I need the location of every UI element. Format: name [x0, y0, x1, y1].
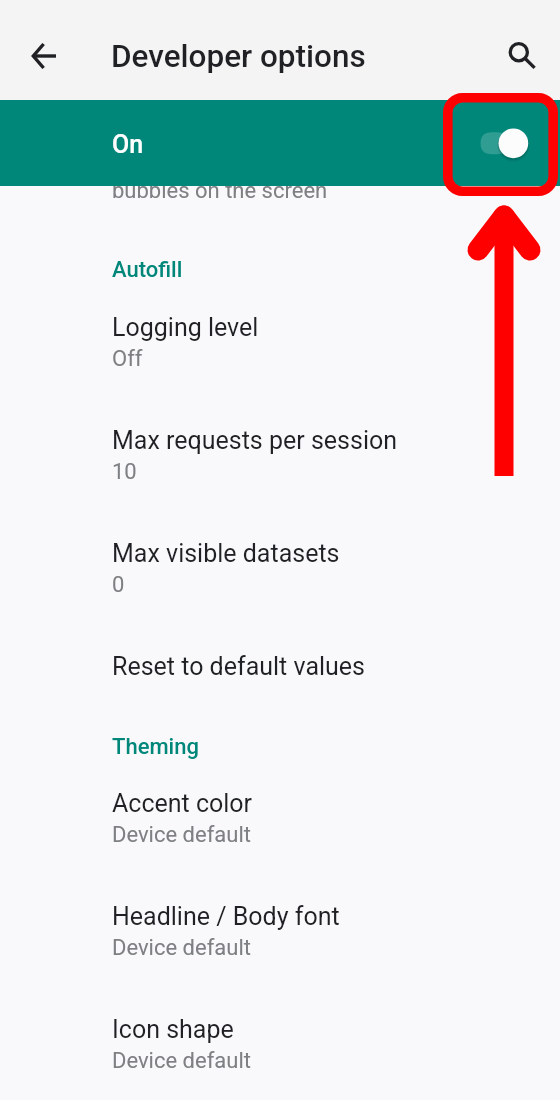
staticText: Autofill	[112, 257, 183, 283]
button[interactable]: Use developer options	[470, 112, 542, 174]
staticText: Developer options	[111, 38, 366, 75]
staticText: 10	[112, 459, 137, 485]
staticText: Theming	[112, 734, 199, 760]
staticText: Max visible datasets	[112, 539, 340, 568]
button[interactable]: Search	[493, 27, 545, 79]
staticText: 0	[112, 572, 125, 598]
staticText: Max requests per session	[112, 426, 398, 455]
staticText: bubbles on the screen	[112, 178, 328, 204]
button[interactable]	[0, 765, 560, 861]
staticText: Device default	[112, 935, 251, 961]
staticText: Accent color	[112, 789, 253, 818]
staticText: Icon shape	[112, 1015, 234, 1044]
staticText: Device default	[112, 1048, 251, 1074]
button[interactable]	[0, 628, 560, 686]
staticText: Device default	[112, 822, 251, 848]
button[interactable]	[0, 991, 560, 1087]
button[interactable]	[0, 289, 560, 385]
staticText: On	[112, 130, 144, 159]
button[interactable]: Navigate up	[28, 30, 80, 82]
staticText: Reset to default values	[112, 652, 366, 681]
button[interactable]	[0, 100, 560, 186]
button[interactable]	[0, 878, 560, 974]
button[interactable]	[0, 515, 560, 611]
button[interactable]	[0, 402, 560, 498]
staticText: Logging level	[112, 313, 259, 342]
staticText: Off	[112, 346, 143, 372]
staticText: Headline / Body font	[112, 902, 340, 931]
